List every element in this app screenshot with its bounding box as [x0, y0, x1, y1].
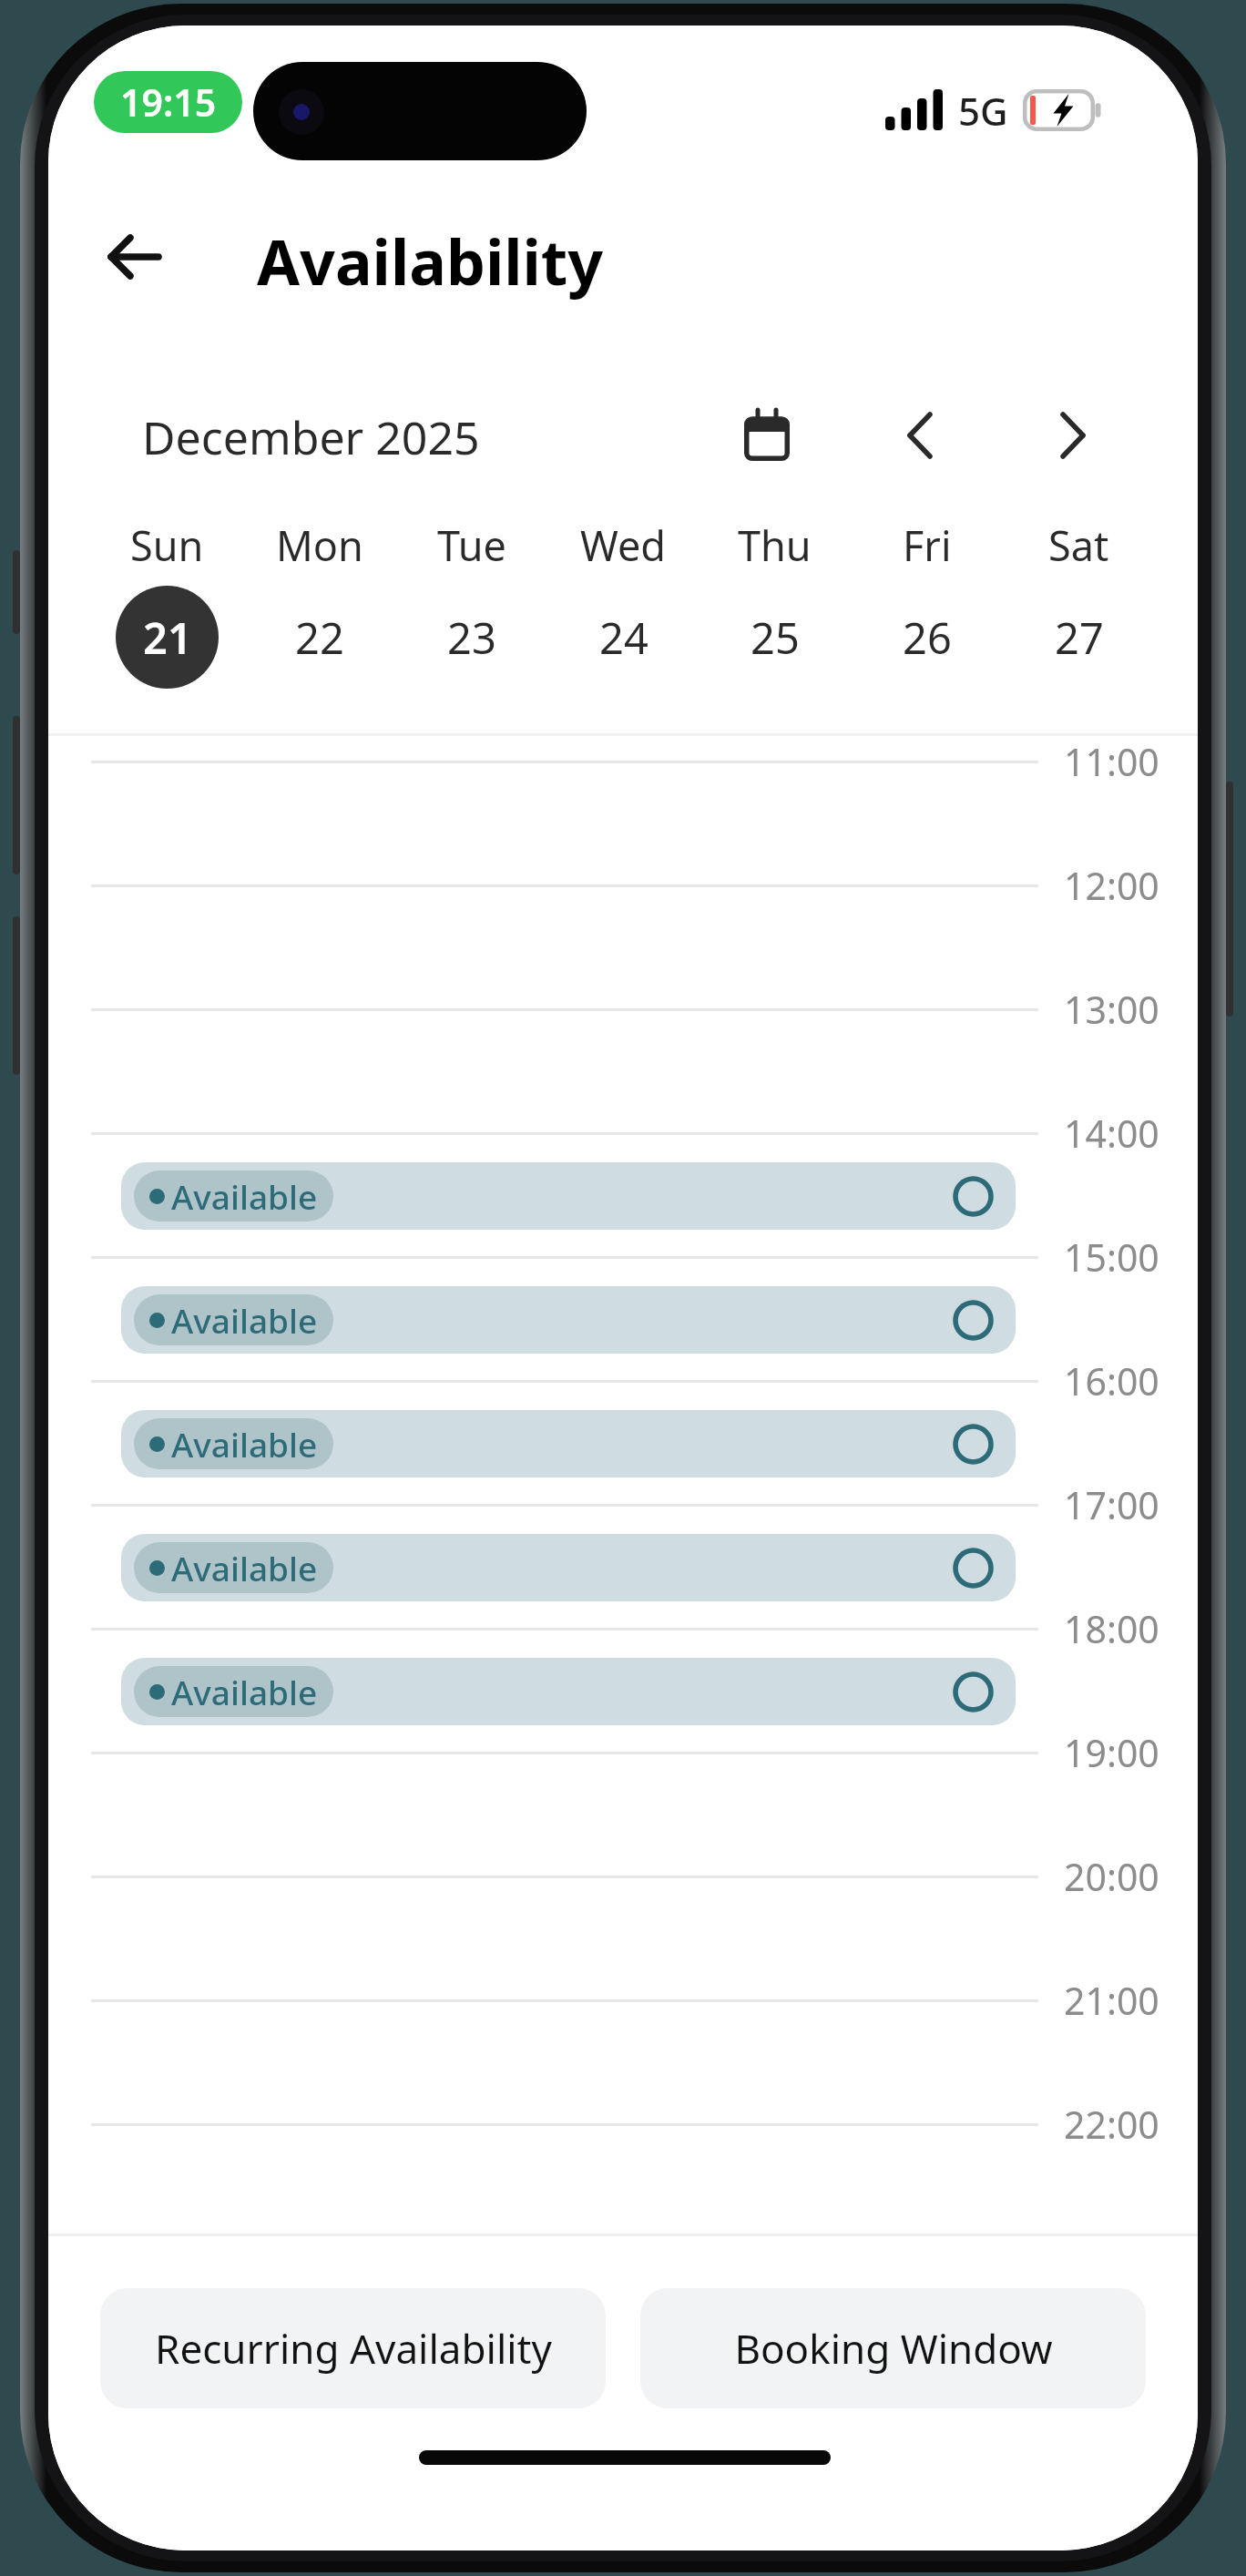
staticText: 26 — [903, 608, 952, 667]
button[interactable]: Available — [121, 1534, 1016, 1601]
button[interactable]: Available — [121, 1658, 1016, 1725]
staticText: 15:00 — [1064, 1232, 1198, 1283]
staticText: 17:00 — [1064, 1479, 1198, 1530]
staticText: Available — [171, 1297, 318, 1343]
staticText: Wed — [580, 517, 667, 573]
staticText: Available — [171, 1669, 318, 1714]
button[interactable]: Tue — [395, 508, 547, 721]
button[interactable]: Next week — [1026, 388, 1120, 483]
staticText: Available — [171, 1173, 318, 1219]
button[interactable]: Select time slot — [948, 1419, 997, 1468]
staticText: 27 — [1055, 608, 1104, 667]
staticText: December 2025 — [142, 406, 480, 468]
button[interactable]: Previous week — [873, 388, 967, 483]
button[interactable]: Sat — [1003, 508, 1155, 721]
staticText: 22:00 — [1064, 2099, 1198, 2150]
button[interactable]: Pick date — [720, 388, 814, 483]
staticText: 21 — [143, 608, 192, 667]
staticText: Booking Window — [734, 2321, 1053, 2376]
staticText: 20:00 — [1064, 1851, 1198, 1902]
staticText: Thu — [738, 517, 812, 573]
staticText: 19:00 — [1064, 1727, 1198, 1778]
staticText: Available — [171, 1421, 318, 1467]
staticText: 5G — [958, 85, 1008, 137]
staticText: 11:00 — [1064, 736, 1198, 787]
staticText: 18:00 — [1064, 1603, 1198, 1654]
button[interactable]: Fri — [851, 508, 1003, 721]
button[interactable]: Select time slot — [948, 1295, 997, 1344]
button[interactable]: Select time slot — [948, 1667, 997, 1716]
button[interactable]: Available — [121, 1286, 1016, 1354]
staticText: 23 — [447, 608, 496, 667]
staticText: 14:00 — [1064, 1108, 1198, 1159]
button[interactable]: Thu — [699, 508, 851, 721]
staticText: 22 — [295, 608, 344, 667]
button[interactable]: Select time slot — [948, 1543, 997, 1592]
staticText: 24 — [599, 608, 649, 667]
button[interactable]: Select time slot — [948, 1171, 997, 1221]
button[interactable]: Mon — [243, 508, 395, 721]
staticText: 12:00 — [1064, 860, 1198, 911]
button[interactable]: Sun — [91, 508, 243, 721]
button[interactable]: Booking Window — [640, 2288, 1146, 2408]
button[interactable]: Recurring Availability — [100, 2288, 606, 2408]
staticText: 21:00 — [1064, 1975, 1198, 2026]
staticText: Sat — [1048, 517, 1109, 573]
staticText: Fri — [903, 517, 952, 573]
staticText: 16:00 — [1064, 1355, 1198, 1406]
staticText: Availability — [257, 219, 604, 303]
button[interactable]: Available — [121, 1162, 1016, 1230]
button[interactable]: Available — [121, 1410, 1016, 1477]
staticText: 25 — [751, 608, 800, 667]
staticText: Mon — [276, 517, 363, 573]
staticText: Recurring Availability — [155, 2321, 552, 2376]
staticText: Tue — [437, 517, 506, 573]
button[interactable]: Wed — [547, 508, 700, 721]
staticText: Sun — [130, 517, 204, 573]
staticText: Available — [171, 1545, 318, 1590]
staticText: 19:15 — [120, 77, 217, 128]
staticText: 13:00 — [1064, 984, 1198, 1035]
button[interactable]: Back — [84, 206, 186, 308]
